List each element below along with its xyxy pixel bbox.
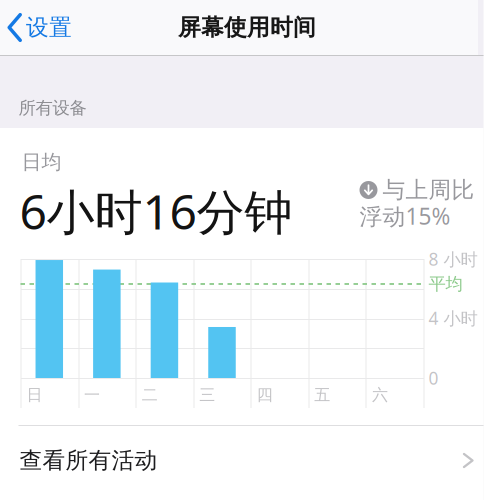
staticText: 二: [142, 385, 158, 405]
staticText: 与上周比: [382, 176, 474, 204]
staticText: 查看所有活动: [19, 447, 157, 474]
staticText: 三: [199, 385, 215, 405]
staticText: 屏幕使用时间: [178, 14, 316, 41]
staticText: 六: [372, 385, 388, 405]
staticText: 五: [314, 385, 330, 405]
staticText: 四: [257, 385, 273, 405]
staticText: 日均: [21, 150, 61, 174]
staticText: 所有设备: [18, 97, 86, 119]
staticText: 设置: [26, 14, 72, 41]
staticText: 浮动15%: [359, 201, 450, 231]
staticText: 8 小时: [428, 247, 477, 270]
staticText: 6小时16分钟: [19, 179, 292, 243]
staticText: 一: [84, 385, 100, 405]
button[interactable]: 查看所有活动: [0, 426, 483, 495]
button[interactable]: 设置: [0, 0, 104, 55]
staticText: 4 小时: [428, 306, 477, 329]
staticText: 0: [428, 366, 438, 389]
staticText: 日: [26, 385, 42, 405]
staticText: 平均: [428, 273, 462, 295]
